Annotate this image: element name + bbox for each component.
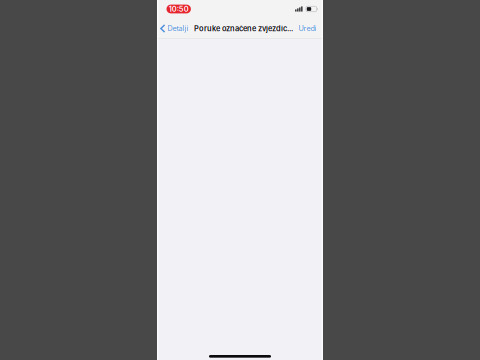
staticText: Detalji — [167, 24, 188, 33]
button[interactable]: Detalji — [157, 20, 188, 37]
staticText: Poruke označene zvjezdic... — [194, 24, 293, 33]
staticText: Uredi — [298, 24, 316, 33]
staticText: 10:50 — [169, 4, 189, 13]
button[interactable]: Uredi — [298, 20, 323, 37]
